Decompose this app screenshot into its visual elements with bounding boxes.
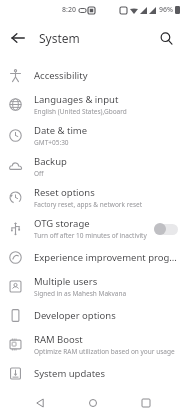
staticText: Off	[34, 169, 44, 178]
button[interactable]: Home	[80, 393, 106, 413]
staticText: Turn off after 10 minutes of inactivity	[34, 231, 147, 240]
staticText: OTG storage	[34, 217, 90, 230]
staticText: Languages & input	[34, 93, 119, 106]
button[interactable]: Date & time	[0, 120, 186, 151]
button[interactable]: Search	[152, 24, 180, 52]
staticText: Reset options	[34, 186, 95, 199]
staticText: Optimize RAM utilization based on your u…	[34, 347, 175, 356]
staticText: 96%	[159, 5, 173, 15]
staticText: Developer options	[34, 309, 116, 322]
staticText: RAM Boost	[34, 333, 83, 346]
staticText: System	[39, 30, 80, 46]
staticText: 8:20	[62, 5, 76, 15]
button[interactable]: Recents	[133, 393, 159, 413]
button[interactable]: Reset options	[0, 182, 186, 213]
button[interactable]: Accessibility	[0, 62, 186, 89]
button[interactable]: Multiple users	[0, 271, 186, 302]
button[interactable]: Experience improvement programs	[0, 244, 186, 271]
button[interactable]: Back	[27, 393, 53, 413]
button[interactable]: RAM Boost	[0, 329, 186, 360]
staticText: Date & time	[34, 124, 88, 137]
staticText: Experience improvement programs	[34, 251, 178, 264]
button[interactable]: System updates	[0, 360, 186, 387]
button[interactable]: Backup	[0, 151, 186, 182]
staticText: GMT+05:30	[34, 138, 69, 147]
button[interactable]: OTG storage	[0, 213, 186, 244]
staticText: Multiple users	[34, 275, 98, 288]
staticText: Signed in as Mahesh Makvana	[34, 289, 127, 298]
button[interactable]: Languages & input	[0, 89, 186, 120]
button[interactable]: Back	[4, 24, 32, 52]
button[interactable]: Developer options	[0, 302, 186, 329]
button[interactable]: OTG storage toggle	[154, 222, 178, 236]
staticText: Accessibility	[34, 69, 88, 82]
staticText: Factory reset, apps & network reset	[34, 200, 143, 209]
staticText: System updates	[34, 367, 105, 380]
staticText: English (United States),Gboard	[34, 107, 127, 116]
staticText: Backup	[34, 155, 67, 168]
